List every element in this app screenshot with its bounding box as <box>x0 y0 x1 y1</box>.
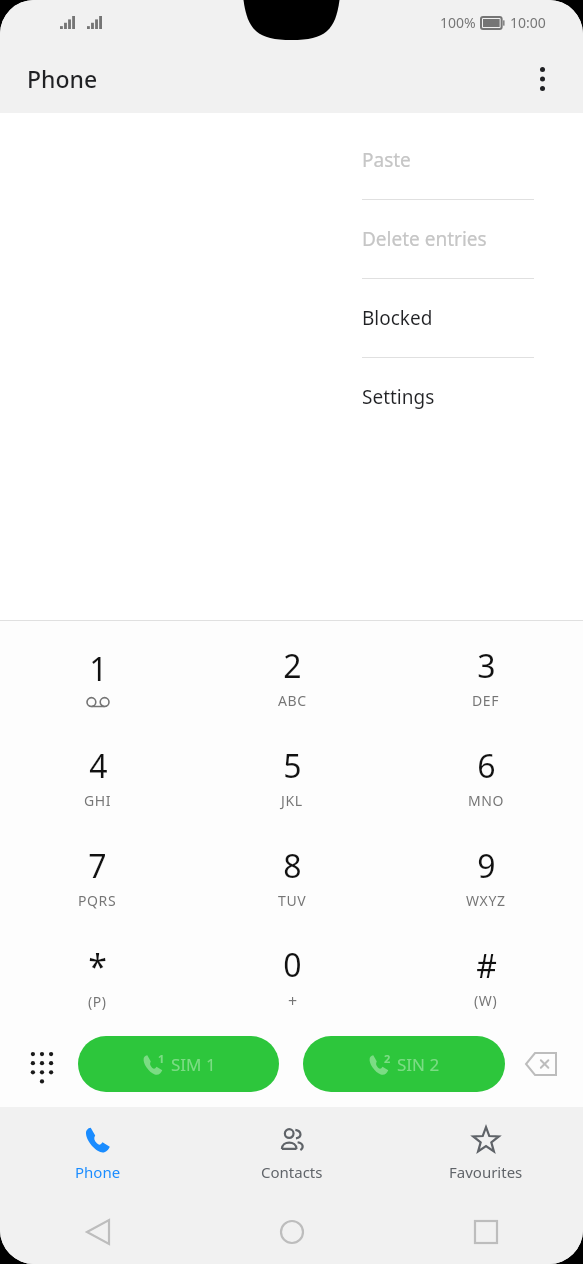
staticText: MNO <box>468 791 505 810</box>
staticText: 2 <box>384 1051 391 1066</box>
button[interactable]: Phone <box>0 1107 195 1200</box>
staticText: WXYZ <box>466 891 506 910</box>
staticText: 0 <box>283 943 302 987</box>
staticText: PQRS <box>78 891 117 910</box>
button[interactable]: 8 <box>195 827 389 927</box>
staticText: 100% <box>440 13 476 32</box>
button[interactable]: 4 <box>0 727 195 827</box>
staticText: SIN 2 <box>397 1053 440 1076</box>
staticText: 4 <box>89 744 108 788</box>
staticText: Delete entries <box>362 226 487 252</box>
button[interactable]: * <box>0 927 195 1027</box>
button[interactable]: 2 <box>195 627 389 727</box>
button[interactable]: Backspace <box>515 1038 567 1090</box>
button[interactable]: 3 <box>389 627 583 727</box>
button[interactable]: 0 <box>195 927 389 1027</box>
button[interactable]: Blocked <box>362 279 534 358</box>
button[interactable]: 1 <box>78 1036 279 1092</box>
staticText: JKL <box>281 791 303 810</box>
button[interactable]: 6 <box>389 727 583 827</box>
button[interactable]: 1 <box>0 627 195 727</box>
staticText: 10:00 <box>510 13 546 32</box>
button[interactable]: Favourites <box>389 1107 583 1200</box>
button[interactable]: More options <box>518 55 566 103</box>
staticText: + <box>288 990 298 1012</box>
staticText: 8 <box>283 844 302 888</box>
staticText: TUV <box>278 891 307 910</box>
staticText: Phone <box>75 1162 121 1182</box>
button[interactable]: 2 <box>303 1036 505 1092</box>
staticText: 2 <box>283 644 302 688</box>
button[interactable]: Home <box>195 1200 389 1264</box>
button[interactable]: # <box>389 927 583 1027</box>
staticText: * <box>88 943 107 989</box>
button[interactable]: 7 <box>0 827 195 927</box>
staticText: Paste <box>362 147 411 173</box>
staticText: Phone <box>27 63 98 94</box>
staticText: SIM 1 <box>171 1053 216 1076</box>
staticText: (W) <box>474 991 498 1010</box>
button[interactable]: Settings <box>362 358 534 436</box>
staticText: Favourites <box>449 1162 523 1182</box>
button[interactable]: Keypad <box>16 1038 68 1090</box>
staticText: 6 <box>477 744 496 788</box>
staticText: 1 <box>158 1051 165 1066</box>
button[interactable]: Delete entries <box>362 200 534 279</box>
staticText: # <box>476 944 497 988</box>
staticText: 3 <box>477 644 496 688</box>
button[interactable]: Back <box>0 1200 195 1264</box>
staticText: GHI <box>84 791 112 810</box>
button[interactable]: Recents <box>389 1200 583 1264</box>
button[interactable]: 5 <box>195 727 389 827</box>
staticText: 5 <box>283 744 302 788</box>
button[interactable]: Paste <box>362 121 534 200</box>
staticText: ABC <box>278 691 307 710</box>
button[interactable]: Contacts <box>195 1107 389 1200</box>
staticText: 7 <box>88 844 107 888</box>
staticText: 1 <box>89 647 108 691</box>
button[interactable]: 9 <box>389 827 583 927</box>
staticText: DEF <box>472 691 500 710</box>
staticText: 9 <box>477 844 496 888</box>
staticText: Blocked <box>362 305 433 331</box>
staticText: Contacts <box>261 1162 323 1182</box>
staticText: Settings <box>362 384 435 410</box>
staticText: (P) <box>88 992 107 1011</box>
